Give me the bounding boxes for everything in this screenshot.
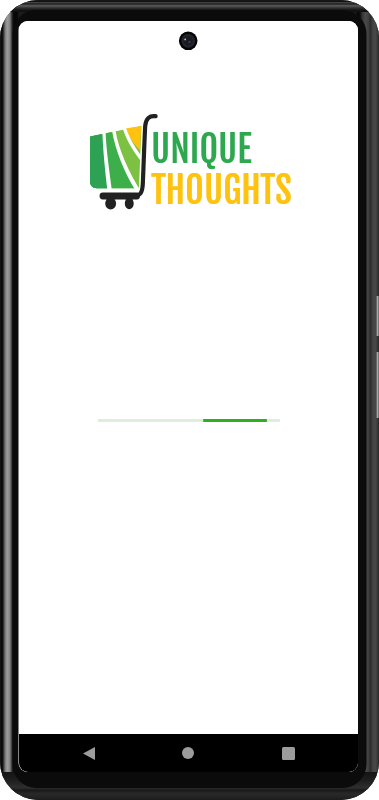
- staticText: THOUGHTS: [151, 168, 292, 213]
- button[interactable]: Home: [138, 734, 238, 772]
- button[interactable]: Recent apps: [238, 734, 338, 772]
- staticText: UNIQUE: [151, 127, 252, 172]
- button[interactable]: Back: [39, 734, 138, 772]
